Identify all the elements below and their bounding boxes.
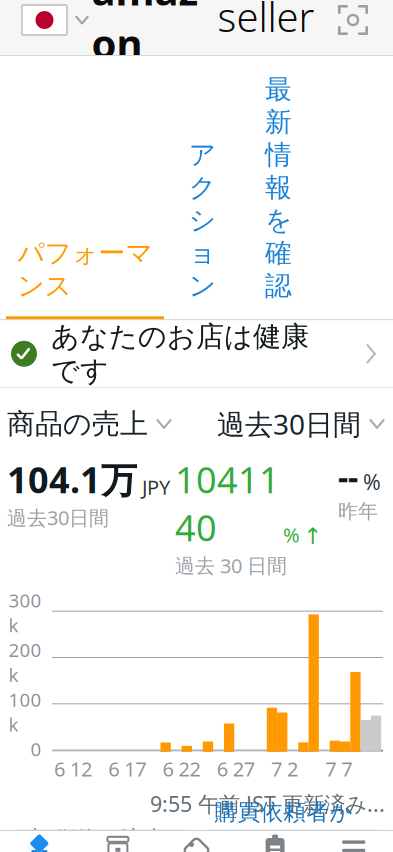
- staticText: 300k: [8, 588, 41, 637]
- button[interactable]: 過去30日間: [217, 405, 385, 442]
- staticText: 商品の売上: [7, 407, 148, 441]
- button[interactable]: あなたのお店は健康です: [0, 320, 393, 387]
- button[interactable]: 購買依頼者からのメッセージ: [201, 830, 383, 852]
- staticText: あなたのお店は健康です: [51, 319, 309, 388]
- staticText: 過去30日間: [217, 405, 361, 442]
- staticText: 購買依頼者からのメッセージ: [214, 798, 352, 852]
- button[interactable]: 未発送の注文: [10, 830, 191, 852]
- staticText: seller: [217, 0, 314, 43]
- staticText: 6 22: [162, 755, 200, 782]
- staticText: %: [363, 468, 381, 496]
- staticText: 1041140: [175, 455, 280, 551]
- button[interactable]: パフォーマンス: [0, 237, 164, 319]
- staticText: --: [338, 455, 358, 498]
- button[interactable]: 最新情報を確認: [240, 73, 317, 319]
- staticText: 104.1万: [7, 455, 137, 503]
- staticText: アクション: [189, 138, 216, 302]
- staticText: 6 17: [108, 755, 146, 782]
- staticText: 6 27: [217, 755, 255, 782]
- button[interactable]: 出品情報: [157, 837, 236, 852]
- staticText: 9:55 午前 JST 更新済み...: [150, 790, 385, 818]
- staticText: amazon: [91, 0, 211, 70]
- staticText: パフォーマンス: [17, 237, 152, 302]
- staticText: 0: [30, 737, 41, 761]
- staticText: 未発送の注文: [23, 825, 168, 852]
- staticText: 過去 30 日間: [175, 552, 287, 579]
- staticText: 過去30日間: [7, 504, 109, 531]
- staticText: 7 2: [271, 755, 298, 782]
- button[interactable]: ホーム: [0, 837, 79, 852]
- button[interactable]: 在庫: [236, 837, 314, 852]
- staticText: ↑: [303, 523, 322, 549]
- staticText: 7 7: [325, 755, 352, 782]
- button[interactable]: Scan barcode: [331, 0, 375, 42]
- staticText: 6 12: [54, 755, 92, 782]
- staticText: %: [283, 521, 300, 548]
- staticText: 200k: [8, 637, 41, 687]
- button[interactable]: Marketplace: Japan: [22, 0, 89, 43]
- button[interactable]: 商品の売上: [7, 407, 172, 441]
- button[interactable]: 注文: [79, 837, 157, 852]
- staticText: 昨年: [338, 499, 378, 524]
- button[interactable]: アクション: [164, 138, 240, 319]
- staticText: JPY: [142, 474, 170, 500]
- button[interactable]: メニュー: [314, 837, 393, 852]
- staticText: 100k: [8, 687, 41, 737]
- staticText: 最新情報を確認: [265, 73, 292, 302]
